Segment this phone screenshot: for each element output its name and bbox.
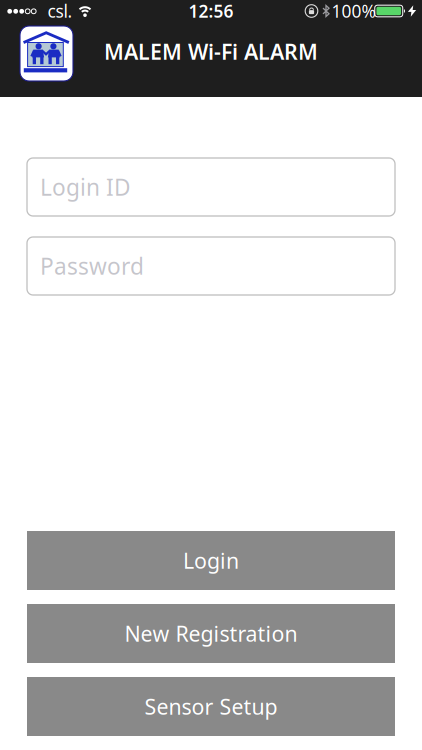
button[interactable]: MALEM home: [20, 26, 73, 81]
button[interactable]: Sensor Setup: [27, 677, 395, 736]
button[interactable]: New Registration: [27, 604, 395, 663]
staticText: 12:56: [188, 0, 233, 22]
staticText: Password: [40, 251, 144, 281]
staticText: csl.: [47, 0, 72, 22]
staticText: Login ID: [40, 172, 131, 202]
staticText: MALEM Wi-Fi ALARM: [104, 37, 318, 66]
button[interactable]: Login ID: [27, 158, 395, 216]
button[interactable]: Login: [27, 531, 395, 590]
staticText: Login: [183, 546, 239, 575]
button[interactable]: Password: [27, 237, 395, 295]
staticText: New Registration: [124, 619, 297, 648]
staticText: Sensor Setup: [144, 692, 277, 721]
staticText: 100%: [331, 0, 375, 22]
